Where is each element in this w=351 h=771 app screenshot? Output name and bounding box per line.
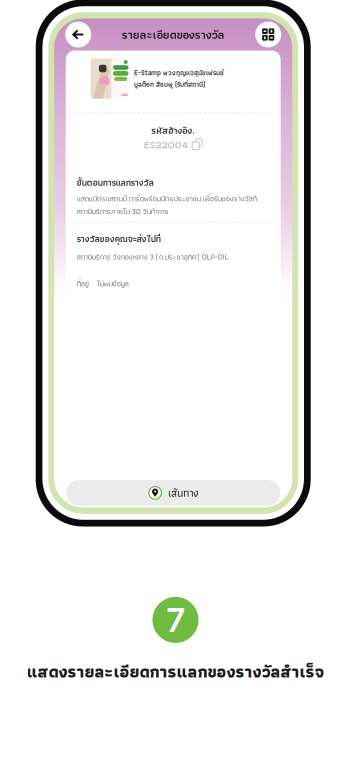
staticText: รายละเอียดของรางวัล [122,25,225,44]
button[interactable]: Scan QR code [255,21,281,47]
staticText: แสดงรายละเอียดการแลกของรางวัลสำเร็จ [26,658,324,685]
staticText: ขั้นตอนการแลกรางวัล [77,175,154,190]
staticText: E-Stamp พวงกุญแจสุนัขเฟรนช์ บูลด็อก สีชม… [134,67,224,90]
staticText: ไม่พบข้อมูล [97,277,129,290]
button[interactable]: Back [65,21,91,47]
button[interactable]: เส้นทาง [66,480,280,506]
staticText: แสดงบัตรแสตมป์ การ์ดพร้อมบัตรประชาชน เพื… [77,192,257,217]
staticText: ที่อยู่ [77,277,89,290]
staticText: รางวัลของคุณจะส่งไปที่ [77,231,161,246]
staticText: ES22004 [144,135,188,153]
staticText: 7 [166,600,184,640]
staticText: รหัสอ้างอิง. [151,122,195,138]
staticText: เส้นทาง [168,484,198,501]
staticText: สถานีบริการ วังกองหลาง 3 (ถ.ประชาอุทิศ) … [77,250,229,263]
